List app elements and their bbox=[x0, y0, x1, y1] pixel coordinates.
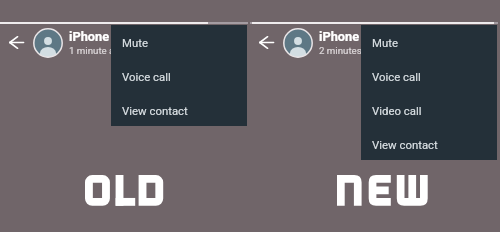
button[interactable]: Voice call bbox=[111, 58, 247, 92]
button[interactable]: Contact avatar bbox=[33, 28, 63, 58]
staticText: View contact bbox=[122, 104, 188, 117]
staticText: Mute bbox=[122, 36, 148, 49]
button[interactable]: Mute bbox=[361, 25, 497, 58]
staticText: Voice call bbox=[122, 70, 171, 83]
button[interactable]: Back bbox=[256, 32, 276, 53]
staticText: Video call bbox=[372, 104, 422, 117]
staticText: 2 minutes ago bbox=[319, 45, 381, 56]
button[interactable]: View contact bbox=[361, 126, 497, 160]
staticText: View contact bbox=[372, 138, 438, 151]
staticText: iPhone bbox=[69, 29, 110, 44]
button[interactable]: Contact avatar bbox=[283, 28, 313, 58]
staticText: Voice call bbox=[372, 70, 421, 83]
button[interactable]: Video call bbox=[361, 92, 497, 126]
button[interactable]: Back bbox=[6, 32, 26, 53]
staticText: 1 minute ago bbox=[69, 45, 126, 56]
button[interactable]: Mute bbox=[111, 25, 247, 58]
staticText: Mute bbox=[372, 36, 398, 49]
button[interactable]: View contact bbox=[111, 92, 247, 126]
button[interactable]: Voice call bbox=[361, 58, 497, 92]
staticText: iPhone bbox=[319, 29, 360, 44]
